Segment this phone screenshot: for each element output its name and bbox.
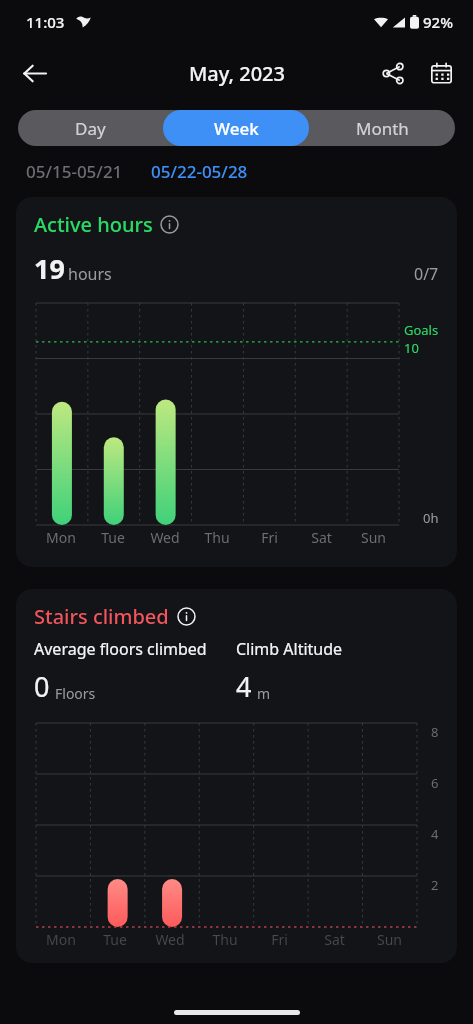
button[interactable]: Active hours: [16, 197, 457, 567]
button[interactable]: Share: [369, 49, 417, 97]
staticText: Mon: [46, 930, 76, 949]
button[interactable]: Month: [309, 110, 455, 146]
staticText: Sat: [311, 528, 332, 547]
staticText: 0/7: [414, 263, 439, 285]
staticText: 11:03: [26, 12, 65, 32]
staticText: Sat: [324, 930, 345, 949]
staticText: 6: [431, 774, 439, 792]
staticText: Tue: [101, 528, 125, 547]
staticText: Fri: [271, 930, 288, 949]
staticText: 92%: [423, 12, 453, 32]
staticText: 05/22-05/28: [151, 160, 248, 183]
button[interactable]: Calendar: [417, 49, 465, 97]
staticText: 8: [431, 723, 439, 741]
other: Info: [160, 215, 179, 234]
staticText: 0h: [423, 509, 439, 527]
staticText: Sun: [377, 930, 402, 949]
staticText: Day: [75, 117, 106, 140]
staticText: Wed: [150, 528, 180, 547]
staticText: 2: [431, 876, 439, 894]
staticText: m: [257, 684, 271, 703]
staticText: Sun: [361, 528, 386, 547]
staticText: Thu: [212, 930, 238, 949]
staticText: Active hours: [34, 211, 153, 238]
staticText: Average floors climbed: [34, 638, 236, 660]
button[interactable]: 05/15-05/21: [26, 160, 123, 183]
staticText: 4: [431, 825, 439, 843]
staticText: Goals: [404, 321, 439, 339]
staticText: Fri: [261, 528, 278, 547]
staticText: May, 2023: [189, 60, 285, 87]
staticText: 05/15-05/21: [26, 160, 123, 183]
staticText: 10: [404, 339, 419, 357]
staticText: Tue: [103, 930, 127, 949]
button[interactable]: Back: [10, 49, 58, 97]
staticText: Wed: [155, 930, 185, 949]
staticText: Floors: [55, 684, 96, 703]
staticText: 0: [34, 668, 50, 705]
button[interactable]: 05/22-05/28: [151, 160, 248, 183]
button[interactable]: Stairs climbed: [16, 589, 457, 963]
button[interactable]: Week: [163, 110, 309, 146]
staticText: 4: [236, 668, 252, 705]
button[interactable]: Day: [18, 110, 163, 146]
staticText: Week: [214, 117, 259, 140]
other: Info: [177, 607, 196, 626]
staticText: Month: [356, 117, 409, 140]
staticText: 19: [34, 250, 65, 287]
staticText: Stairs climbed: [34, 603, 169, 630]
staticText: Mon: [46, 528, 76, 547]
staticText: hours: [68, 263, 112, 285]
staticText: Thu: [204, 528, 230, 547]
staticText: Climb Altitude: [236, 638, 439, 660]
